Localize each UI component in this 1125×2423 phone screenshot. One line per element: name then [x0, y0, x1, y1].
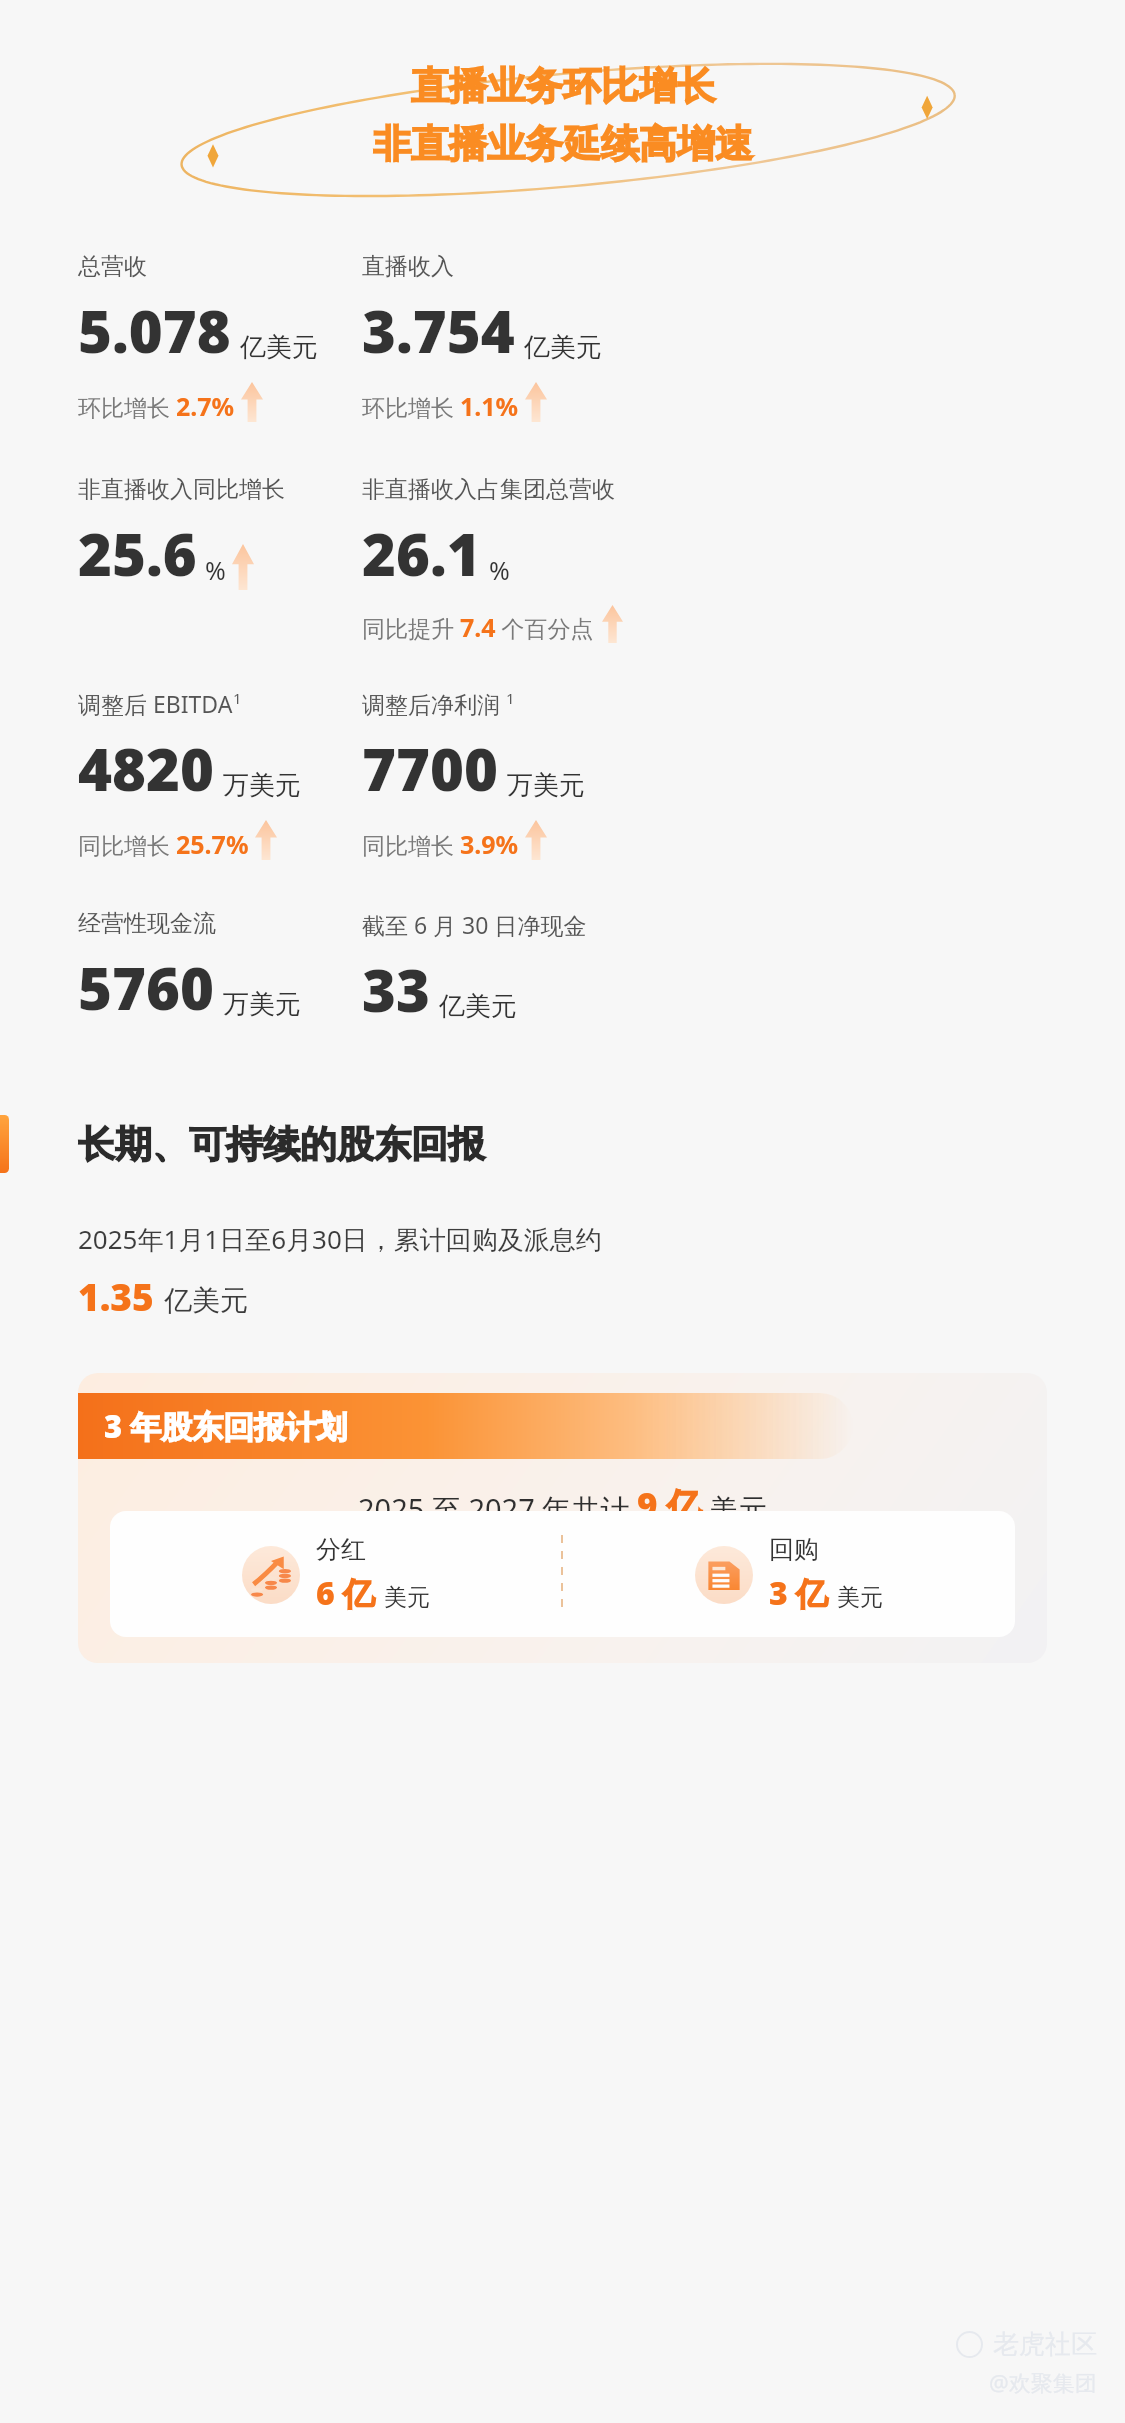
- button[interactable]: 3 年股东回报计划: [78, 1373, 1047, 1663]
- staticText: 非直播收入占集团总营收: [362, 475, 615, 504]
- staticText: 分红: [316, 1534, 366, 1565]
- staticText: 调整后 EBITDA: [78, 688, 233, 719]
- staticText: 直播业务环比增长: [411, 62, 715, 110]
- staticText: 4820: [78, 729, 214, 808]
- staticText: 直播收入: [362, 252, 454, 281]
- staticText: 同比增长 3.9%: [362, 827, 519, 861]
- staticText: 9 亿: [637, 1481, 702, 1529]
- staticText: 1.35: [78, 1271, 154, 1321]
- staticText: 美元: [702, 1489, 768, 1529]
- staticText: 5760: [78, 948, 214, 1027]
- staticText: 万美元: [223, 769, 301, 802]
- staticText: 非直播业务延续高增速: [373, 120, 753, 168]
- staticText: 2025 至 2027 年共计: [358, 1489, 637, 1529]
- staticText: 调整后净利润: [362, 688, 506, 719]
- button[interactable]: 回购: [563, 1511, 1015, 1637]
- staticText: 6 亿: [316, 1571, 376, 1615]
- staticText: @欢聚集团: [989, 2367, 1097, 2397]
- staticText: 长期、可持续的股东回报: [78, 1121, 485, 1168]
- staticText: 亿美元: [240, 331, 318, 364]
- staticText: 1: [233, 688, 242, 708]
- button[interactable]: 分红: [110, 1511, 561, 1637]
- staticText: 万美元: [223, 988, 301, 1021]
- staticText: 1: [506, 688, 515, 708]
- staticText: 环比增长 2.7%: [78, 389, 235, 423]
- staticText: 3 年股东回报计划: [104, 1405, 348, 1447]
- staticText: 2025年1月1日至6月30日，累计回购及派息约: [78, 1221, 602, 1257]
- staticText: 老虎社区: [993, 2328, 1097, 2361]
- staticText: 26.1: [362, 514, 481, 593]
- staticText: 同比增长 25.7%: [78, 827, 249, 861]
- staticText: 亿美元: [164, 1283, 248, 1318]
- staticText: 3 亿: [769, 1571, 829, 1615]
- staticText: 美元: [837, 1583, 883, 1612]
- staticText: %: [489, 553, 510, 587]
- staticText: 总营收: [78, 252, 147, 281]
- staticText: 25.6: [78, 514, 197, 593]
- staticText: 万美元: [507, 769, 585, 802]
- staticText: 同比提升 7.4 个百分点: [362, 610, 594, 644]
- staticText: 亿美元: [439, 990, 517, 1023]
- staticText: %: [205, 553, 226, 587]
- staticText: 亿美元: [524, 331, 602, 364]
- other: 老虎社区: [956, 2328, 1097, 2361]
- staticText: 截至 6 月 30 日净现金: [362, 909, 587, 940]
- staticText: 5.078: [78, 291, 231, 370]
- staticText: 33: [362, 950, 430, 1029]
- staticText: 3.754: [362, 291, 515, 370]
- staticText: 回购: [769, 1534, 819, 1565]
- staticText: 环比增长 1.1%: [362, 389, 519, 423]
- staticText: 非直播收入同比增长: [78, 475, 285, 504]
- staticText: 美元: [384, 1583, 430, 1612]
- staticText: 7700: [362, 729, 498, 808]
- staticText: 经营性现金流: [78, 909, 216, 938]
